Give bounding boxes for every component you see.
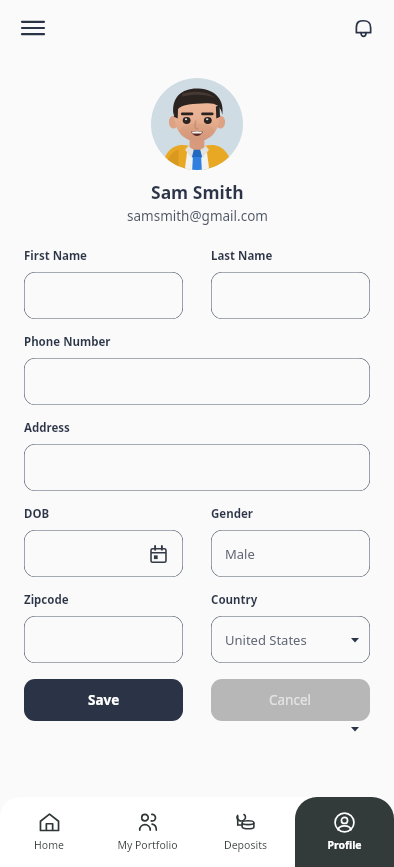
staticText: Zipcode <box>24 592 69 608</box>
button[interactable]: Male <box>211 530 370 577</box>
staticText: samsmith@gmail.com <box>127 207 268 225</box>
button[interactable] <box>24 616 183 663</box>
staticText: Address <box>24 420 70 436</box>
button[interactable] <box>24 444 370 491</box>
button[interactable]: Pick date <box>24 530 183 577</box>
button[interactable] <box>24 272 183 319</box>
button[interactable]: Save <box>24 679 183 721</box>
staticText: Save <box>88 691 120 709</box>
button[interactable]: Home <box>0 797 98 867</box>
staticText: Cancel <box>269 691 312 709</box>
button[interactable] <box>24 358 370 405</box>
button[interactable]: United States <box>211 616 370 663</box>
staticText: United States <box>225 631 307 649</box>
button[interactable]: Deposits <box>196 797 295 867</box>
staticText: Male <box>225 545 255 563</box>
staticText: Phone Number <box>24 334 111 350</box>
button[interactable] <box>211 272 370 319</box>
button[interactable]: Pick date <box>147 543 169 565</box>
staticText: Profile <box>327 838 362 852</box>
button[interactable]: Cancel <box>211 679 370 721</box>
button[interactable]: Menu <box>12 7 54 49</box>
staticText: Last Name <box>211 248 273 264</box>
staticText: Sam Smith <box>151 180 244 204</box>
staticText: Deposits <box>224 838 267 852</box>
staticText: DOB <box>24 506 50 522</box>
button[interactable]: Profile <box>295 797 394 867</box>
staticText: Country <box>211 592 258 608</box>
staticText: Home <box>34 838 64 852</box>
staticText: My Portfolio <box>117 838 178 852</box>
staticText: Gender <box>211 506 253 522</box>
button[interactable]: Profile photo <box>151 78 243 170</box>
button[interactable]: My Portfolio <box>98 797 196 867</box>
button[interactable]: Notifications <box>342 7 384 49</box>
staticText: First Name <box>24 248 87 264</box>
